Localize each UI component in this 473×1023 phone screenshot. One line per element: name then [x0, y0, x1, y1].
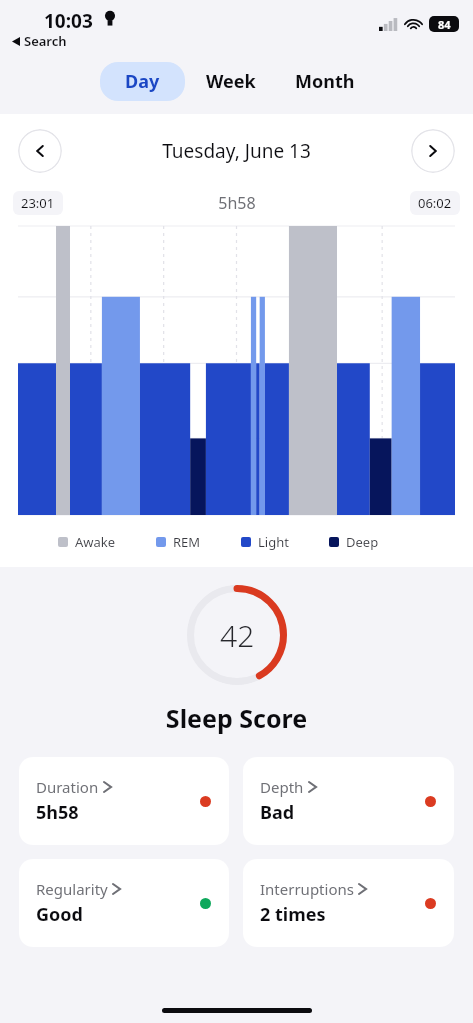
- button[interactable]: Previous day: [18, 129, 62, 173]
- staticText: Good: [36, 902, 83, 927]
- staticText: Regularity: [36, 879, 108, 899]
- staticText: Bad: [260, 800, 295, 825]
- staticText: Sleep Score: [0, 701, 473, 735]
- button[interactable]: Interruptions: [243, 859, 454, 947]
- staticText: Depth: [260, 777, 304, 797]
- staticText: Month: [295, 69, 355, 94]
- staticText: 10:03: [44, 8, 93, 34]
- staticText: REM: [173, 533, 201, 551]
- staticText: Tuesday, June 13: [62, 138, 411, 164]
- staticText: 06:02: [418, 194, 452, 212]
- staticText: Awake: [75, 533, 116, 551]
- staticText: 5h58: [218, 192, 256, 214]
- button[interactable]: Depth: [243, 757, 454, 845]
- staticText: 23:01: [21, 194, 55, 212]
- staticText: 42: [220, 615, 255, 656]
- button[interactable]: Day: [100, 62, 185, 101]
- staticText: Search: [24, 32, 67, 50]
- staticText: Interruptions: [260, 879, 354, 899]
- staticText: Light: [258, 533, 289, 551]
- button[interactable]: Month: [277, 62, 373, 101]
- staticText: Deep: [346, 533, 379, 551]
- button[interactable]: Regularity: [19, 859, 229, 947]
- staticText: 5h58: [36, 800, 79, 825]
- staticText: Week: [206, 69, 256, 94]
- button[interactable]: Duration: [19, 757, 229, 845]
- button[interactable]: Next day: [411, 129, 455, 173]
- staticText: Day: [125, 69, 160, 94]
- staticText: Duration: [36, 777, 99, 797]
- button[interactable]: Week: [185, 62, 277, 101]
- staticText: 2 times: [260, 902, 326, 927]
- staticText: 84: [438, 17, 451, 32]
